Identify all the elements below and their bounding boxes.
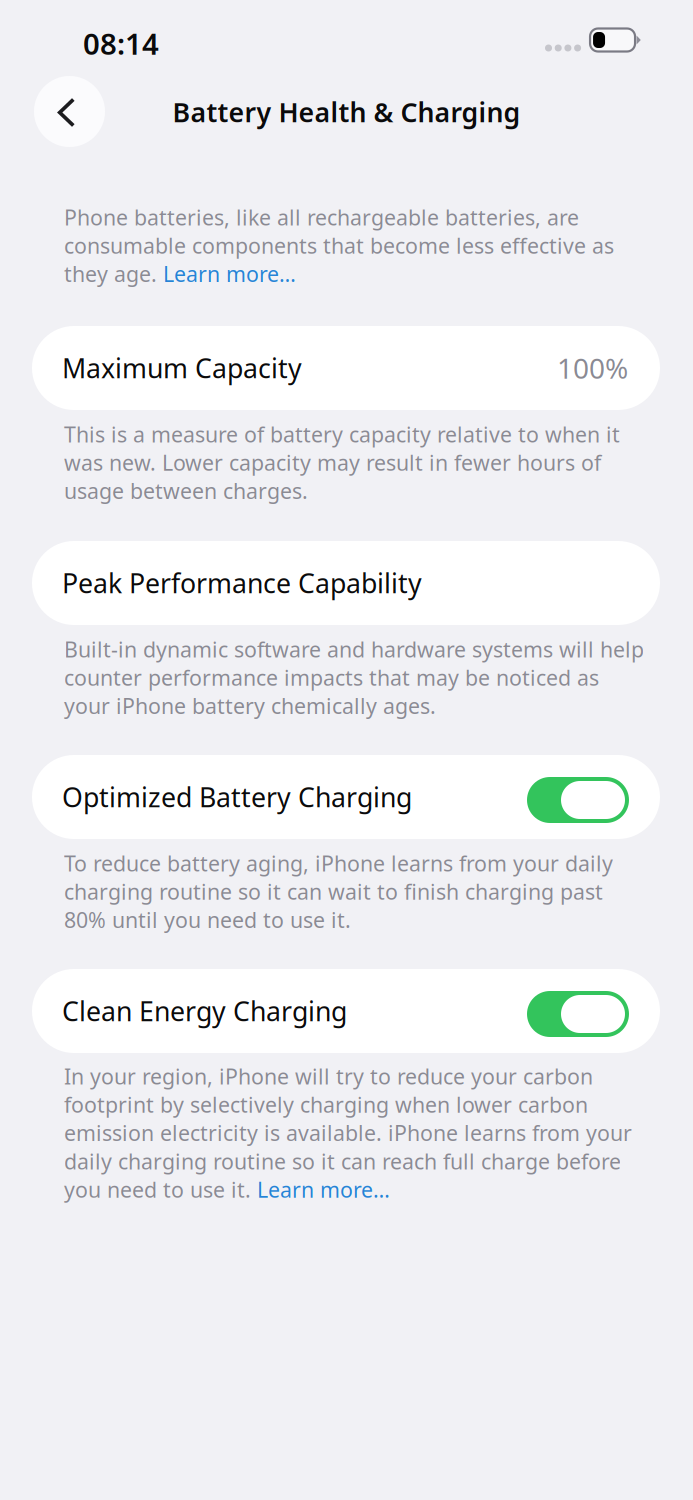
staticText: In your region, iPhone will try to reduc… <box>64 1062 632 1204</box>
staticText: Maximum Capacity <box>62 350 302 386</box>
staticText: Built-in dynamic software and hardware s… <box>64 635 644 720</box>
staticText: Clean Energy Charging <box>62 993 347 1029</box>
staticText: 100% <box>557 349 628 387</box>
button[interactable]: Back <box>34 76 105 147</box>
staticText: This is a measure of battery capacity re… <box>64 420 620 505</box>
button[interactable]: Peak Performance Capability <box>32 541 660 625</box>
staticText: To reduce battery aging, iPhone learns f… <box>64 849 613 934</box>
staticText: Battery Health & Charging <box>172 94 520 130</box>
button[interactable]: Clean Energy Charging <box>32 969 660 1053</box>
staticText: Optimized Battery Charging <box>62 779 412 815</box>
staticText: Peak Performance Capability <box>62 565 422 601</box>
button[interactable]: Optimized Battery Charging <box>32 755 660 839</box>
staticText: Phone batteries, like all rechargeable b… <box>64 203 614 288</box>
button[interactable]: Maximum Capacity <box>32 326 660 410</box>
staticText: 08:14 <box>83 24 159 63</box>
